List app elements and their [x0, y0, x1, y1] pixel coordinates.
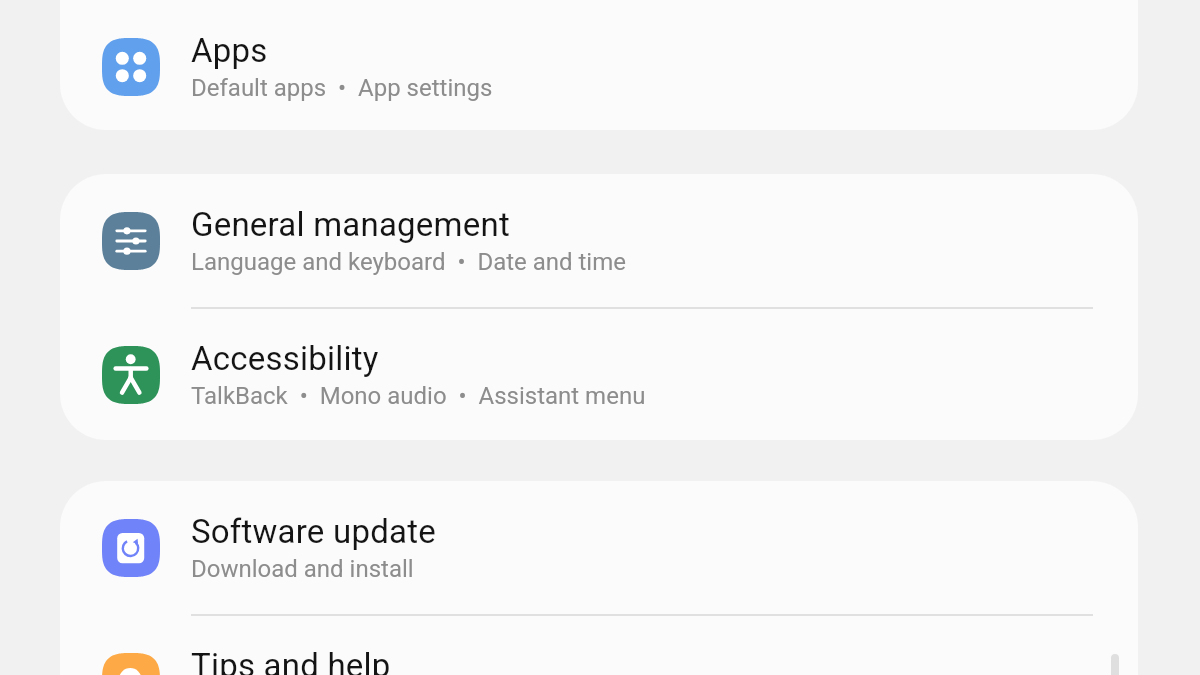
other: Scroll position: [1111, 654, 1119, 675]
staticText: Download and install: [191, 555, 414, 583]
staticText: Apps: [191, 31, 268, 70]
button[interactable]: Apps: [60, 0, 1138, 130]
staticText: Language and keyboard • Date and time: [191, 248, 626, 276]
button[interactable]: Software update: [60, 481, 1138, 614]
button[interactable]: Tips and help: [60, 616, 1138, 675]
staticText: Default apps • App settings: [191, 74, 493, 102]
staticText: Tips and help: [191, 646, 391, 675]
staticText: Accessibility: [191, 339, 379, 378]
staticText: TalkBack • Mono audio • Assistant menu: [191, 382, 646, 410]
staticText: Software update: [191, 512, 436, 551]
button[interactable]: Accessibility: [60, 309, 1138, 440]
staticText: General management: [191, 205, 510, 244]
button[interactable]: General management: [60, 174, 1138, 307]
